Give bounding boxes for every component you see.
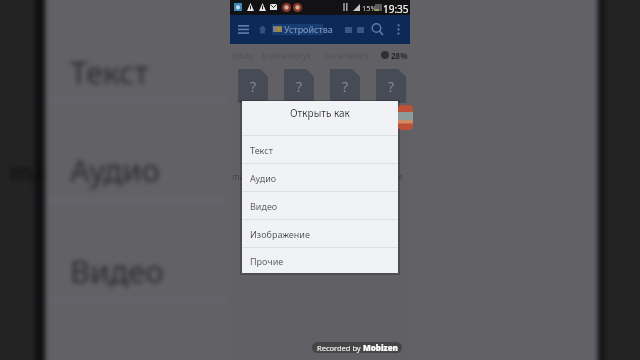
button[interactable]: Unknown file (238, 69, 268, 103)
button[interactable]: Unknown file (376, 69, 406, 103)
staticText: Видео (70, 250, 164, 292)
button[interactable]: Текст (242, 136, 398, 163)
staticText: Recorded by (317, 343, 363, 353)
staticText: Текст (70, 51, 149, 93)
staticText: Mobizen (363, 342, 398, 353)
staticText: 28% (391, 50, 408, 61)
staticText: Видео (250, 200, 278, 212)
button[interactable]: Screen recorder widget (398, 105, 413, 130)
staticText: 19:35 (383, 2, 409, 16)
staticText: ? (388, 77, 395, 96)
staticText: Открыть как (290, 106, 350, 120)
staticText: ma (232, 171, 244, 182)
staticText: Аудио (70, 149, 160, 191)
staticText: Устройства (284, 23, 333, 35)
button[interactable]: Видео (242, 192, 398, 219)
staticText: Текст (250, 144, 273, 156)
staticText: odule (232, 50, 254, 61)
button[interactable]: Изображение (242, 220, 398, 247)
button[interactable]: Search (366, 15, 388, 44)
staticText: e (398, 171, 403, 182)
staticText: ? (250, 77, 257, 96)
button[interactable]: Unknown file (330, 69, 360, 103)
staticText: ? (342, 77, 349, 96)
button[interactable]: More options (388, 15, 408, 44)
button[interactable]: Home (258, 25, 267, 34)
button[interactable]: Unknown file (284, 69, 314, 103)
button[interactable]: Аудио (242, 164, 398, 191)
staticText: Изображение (250, 228, 310, 240)
staticText: Аудио (250, 172, 277, 184)
button[interactable]: Устройства (273, 23, 333, 35)
staticText: parameters (325, 50, 369, 61)
button[interactable]: Прочие (242, 248, 398, 273)
staticText: b.wmemoryk (262, 50, 312, 61)
staticText: Прочие (250, 255, 284, 267)
staticText: ma (10, 155, 46, 188)
staticText: 15% (362, 3, 377, 13)
staticText: ? (296, 77, 303, 96)
button[interactable]: Open navigation menu (233, 15, 253, 44)
